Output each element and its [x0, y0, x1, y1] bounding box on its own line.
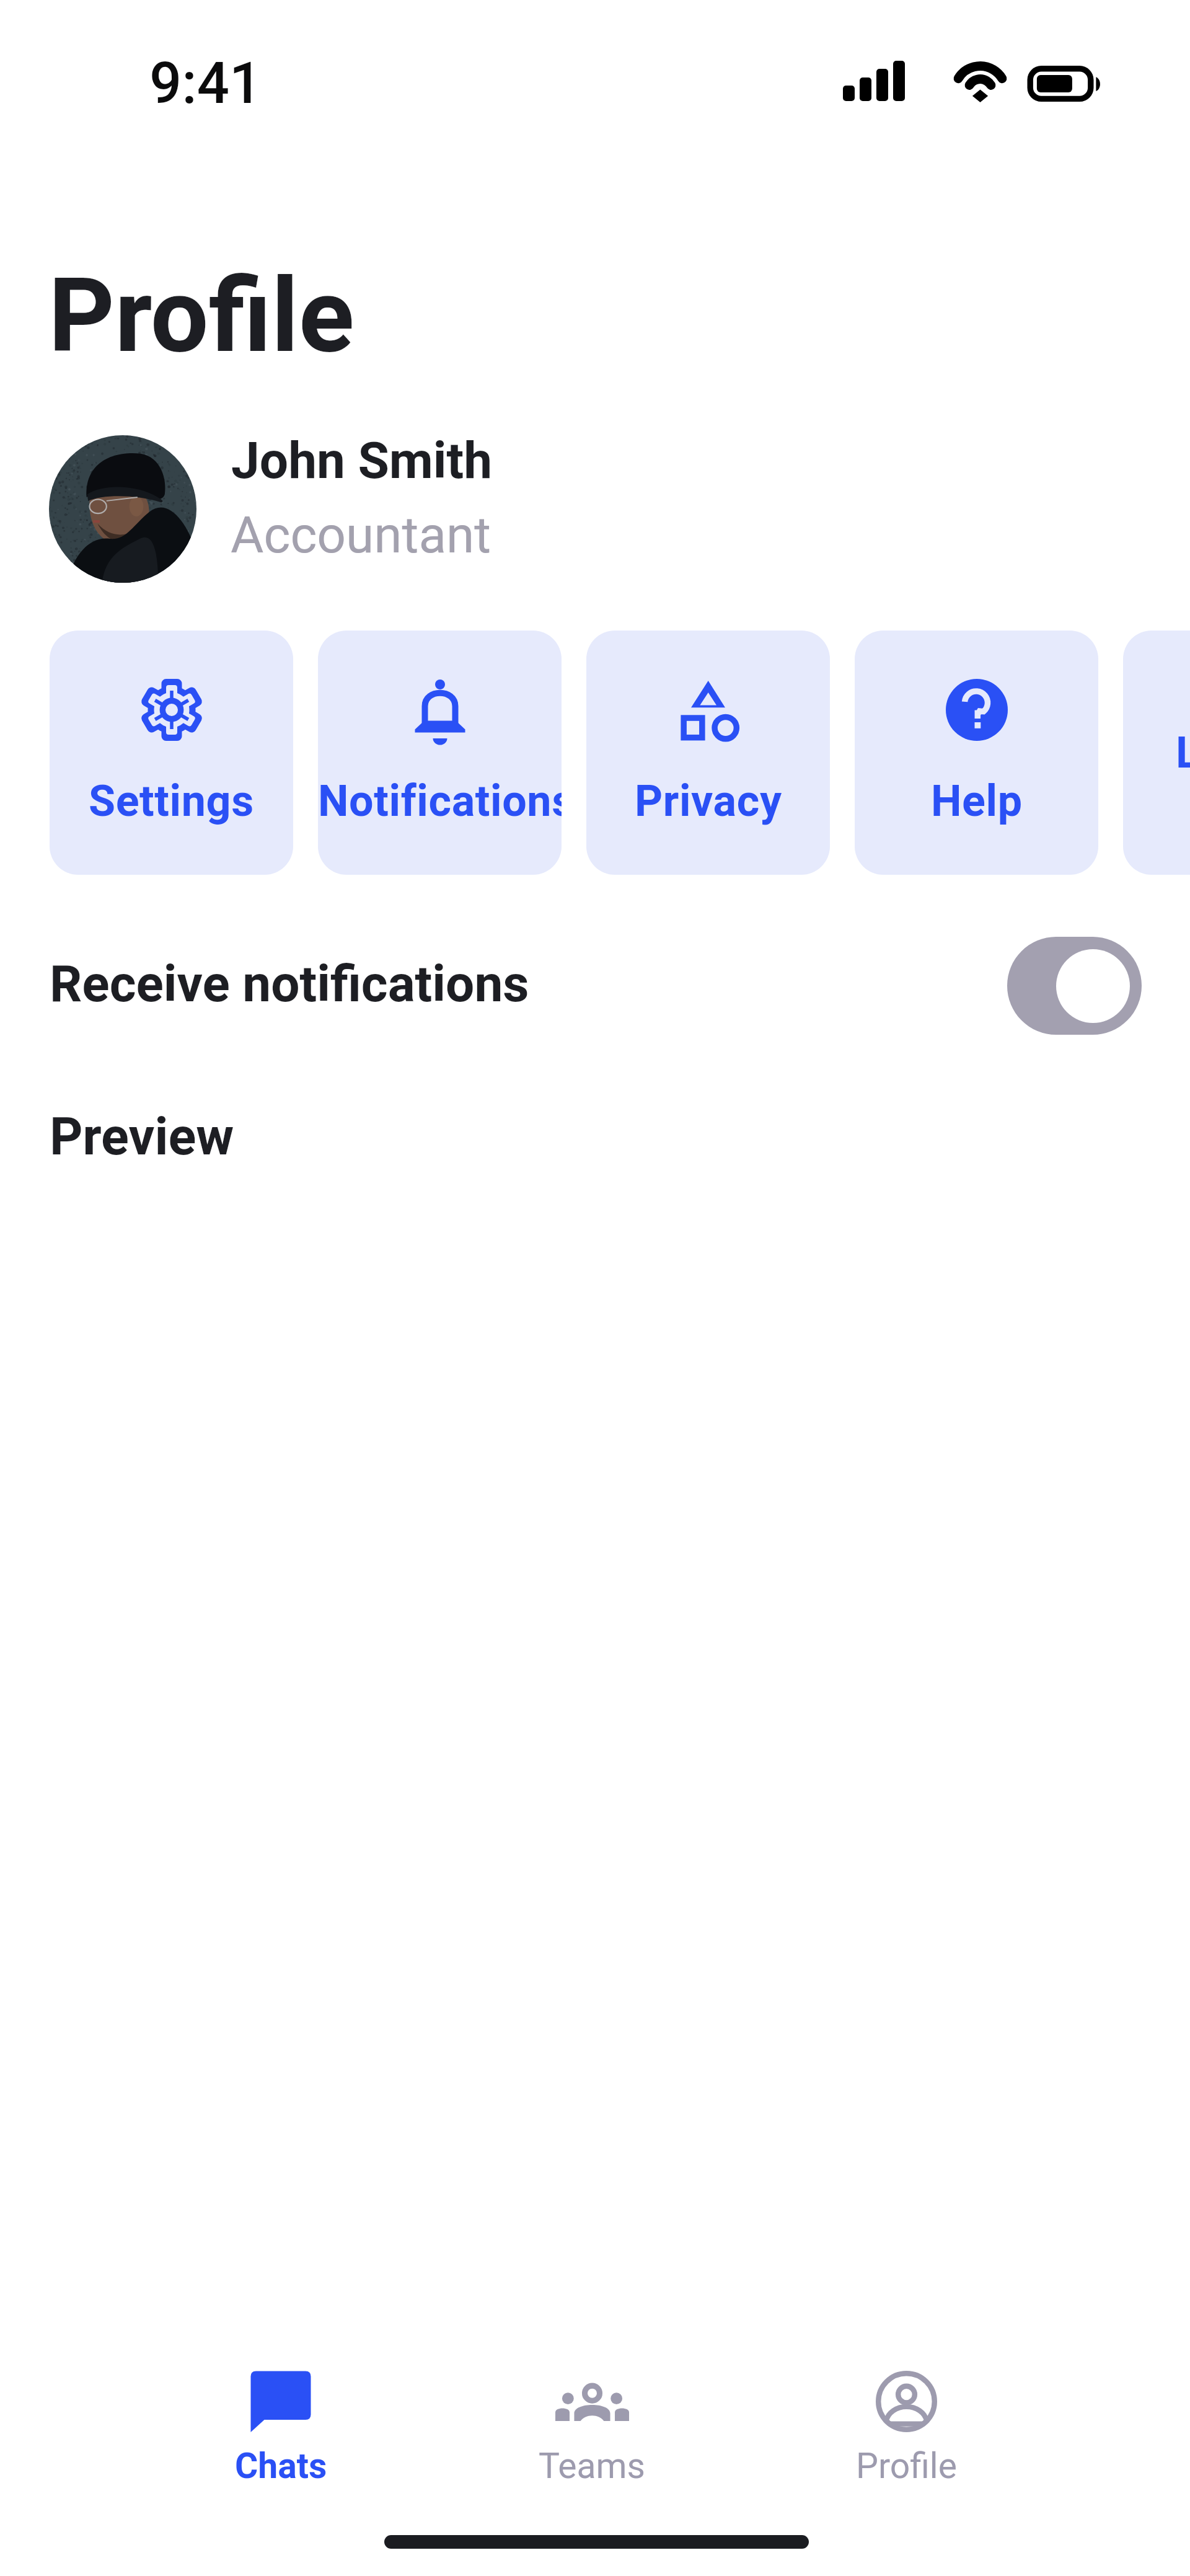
staticText: Settings [89, 776, 254, 826]
staticText: Profile [856, 2445, 957, 2487]
button[interactable]: Profile [826, 2350, 987, 2505]
button[interactable]: Notifications [318, 631, 562, 875]
staticText: Logout [1176, 727, 1190, 778]
staticText: Preview [50, 1107, 234, 1167]
button[interactable]: Settings [50, 631, 293, 875]
staticText: Accountant [231, 505, 491, 565]
staticText: 9:41 [149, 50, 262, 117]
button[interactable]: Help [855, 631, 1098, 875]
staticText: Privacy [635, 776, 782, 826]
staticText: Receive notifications [50, 954, 529, 1014]
button[interactable]: Chats [200, 2350, 361, 2505]
staticText: Notifications [318, 776, 562, 826]
button[interactable]: Teams [511, 2350, 672, 2505]
staticText: Chats [235, 2445, 327, 2487]
staticText: Teams [539, 2445, 645, 2487]
staticText: John Smith [231, 431, 493, 490]
button[interactable]: Receive notifications toggle [1007, 937, 1142, 1035]
button[interactable]: Logout [1123, 631, 1190, 875]
button[interactable]: Privacy [586, 631, 830, 875]
staticText: Profile [48, 255, 355, 376]
staticText: Help [931, 776, 1023, 826]
